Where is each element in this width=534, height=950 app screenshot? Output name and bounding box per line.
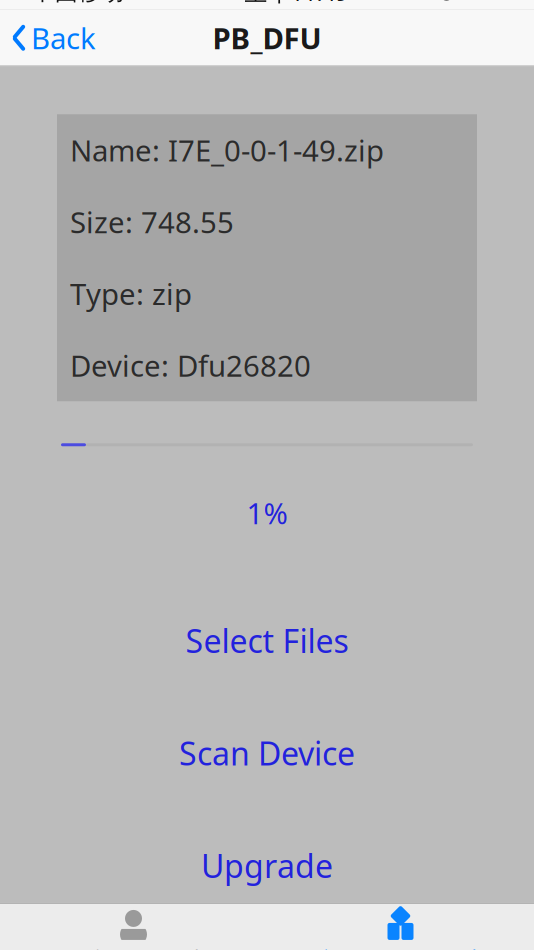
staticText: Name: I7E_0-0-1-49.zip [70,131,384,170]
staticText: 上午11:49 [244,0,348,7]
button[interactable]: Fasting Upgrade [0,903,267,950]
staticText: Select Files [185,619,348,662]
button[interactable]: 1% [232,487,301,538]
button[interactable]: Upgrade [181,836,353,895]
staticText: 中国移动 [32,0,124,6]
staticText: 1% [246,493,287,532]
staticText: Type: zip [70,274,192,313]
button[interactable]: Select Files [165,611,368,670]
staticText: PB_DFU [212,18,321,57]
button[interactable]: Scan Device [159,724,375,782]
button[interactable]: Back [0,10,96,65]
staticText: Upgrade [201,844,333,887]
staticText: Size: 748.55 [70,202,234,241]
staticText: Back [31,18,96,57]
staticText: Device: Dfu26820 [70,346,311,385]
button[interactable]: Firmware Upgrade [267,903,534,950]
staticText: Scan Device [179,732,355,774]
staticText: Firmware Upgrade [313,943,487,950]
